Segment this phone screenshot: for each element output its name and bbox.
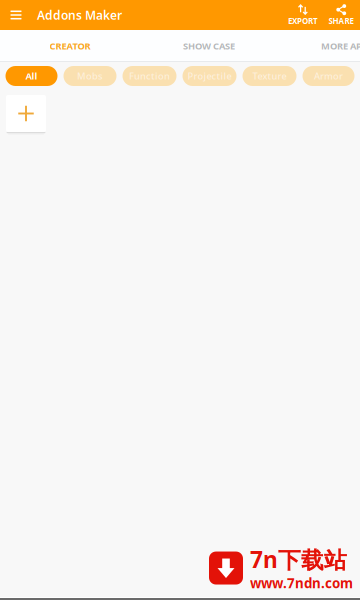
staticText: Projectile [187, 70, 231, 82]
staticText: www.7ndn.com [250, 574, 353, 592]
staticText: EXPORT [288, 16, 318, 26]
button[interactable]: Texture [242, 66, 296, 86]
staticText: Addons Maker [37, 7, 122, 23]
staticText: CREATOR [49, 40, 90, 52]
button[interactable]: New addon [6, 95, 46, 132]
button[interactable]: All [5, 66, 57, 86]
button[interactable]: Armor [302, 66, 354, 86]
button[interactable]: Function [122, 66, 176, 86]
button[interactable]: CREATOR [0, 31, 140, 61]
button[interactable]: SHARE [322, 0, 360, 30]
button[interactable]: Menu [2, 0, 30, 30]
button[interactable]: SHOW CASE [140, 31, 278, 61]
staticText: Texture [252, 70, 286, 82]
staticText: SHOW CASE [183, 40, 235, 52]
staticText: SHARE [328, 16, 353, 26]
staticText: 7n下载站 [250, 544, 347, 574]
staticText: Function [129, 70, 170, 82]
button[interactable]: Mobs [63, 66, 116, 86]
staticText: Mobs [77, 70, 103, 82]
staticText: All [25, 70, 37, 82]
staticText: Armor [314, 70, 343, 82]
button[interactable]: MORE APPS [278, 31, 360, 61]
button[interactable]: Projectile [182, 66, 236, 86]
button[interactable]: EXPORT [284, 0, 322, 30]
staticText: MORE APPS [321, 40, 360, 52]
